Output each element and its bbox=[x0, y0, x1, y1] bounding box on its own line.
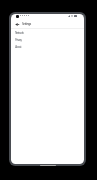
button[interactable]: Privacy bbox=[11, 36, 84, 43]
staticText: Network bbox=[15, 31, 24, 35]
button[interactable]: About bbox=[11, 43, 84, 50]
staticText: Privacy bbox=[15, 38, 22, 42]
staticText: Settings bbox=[22, 22, 31, 26]
button[interactable]: Network bbox=[11, 29, 84, 36]
staticText: About bbox=[15, 45, 22, 49]
button[interactable]: Back bbox=[14, 21, 21, 28]
